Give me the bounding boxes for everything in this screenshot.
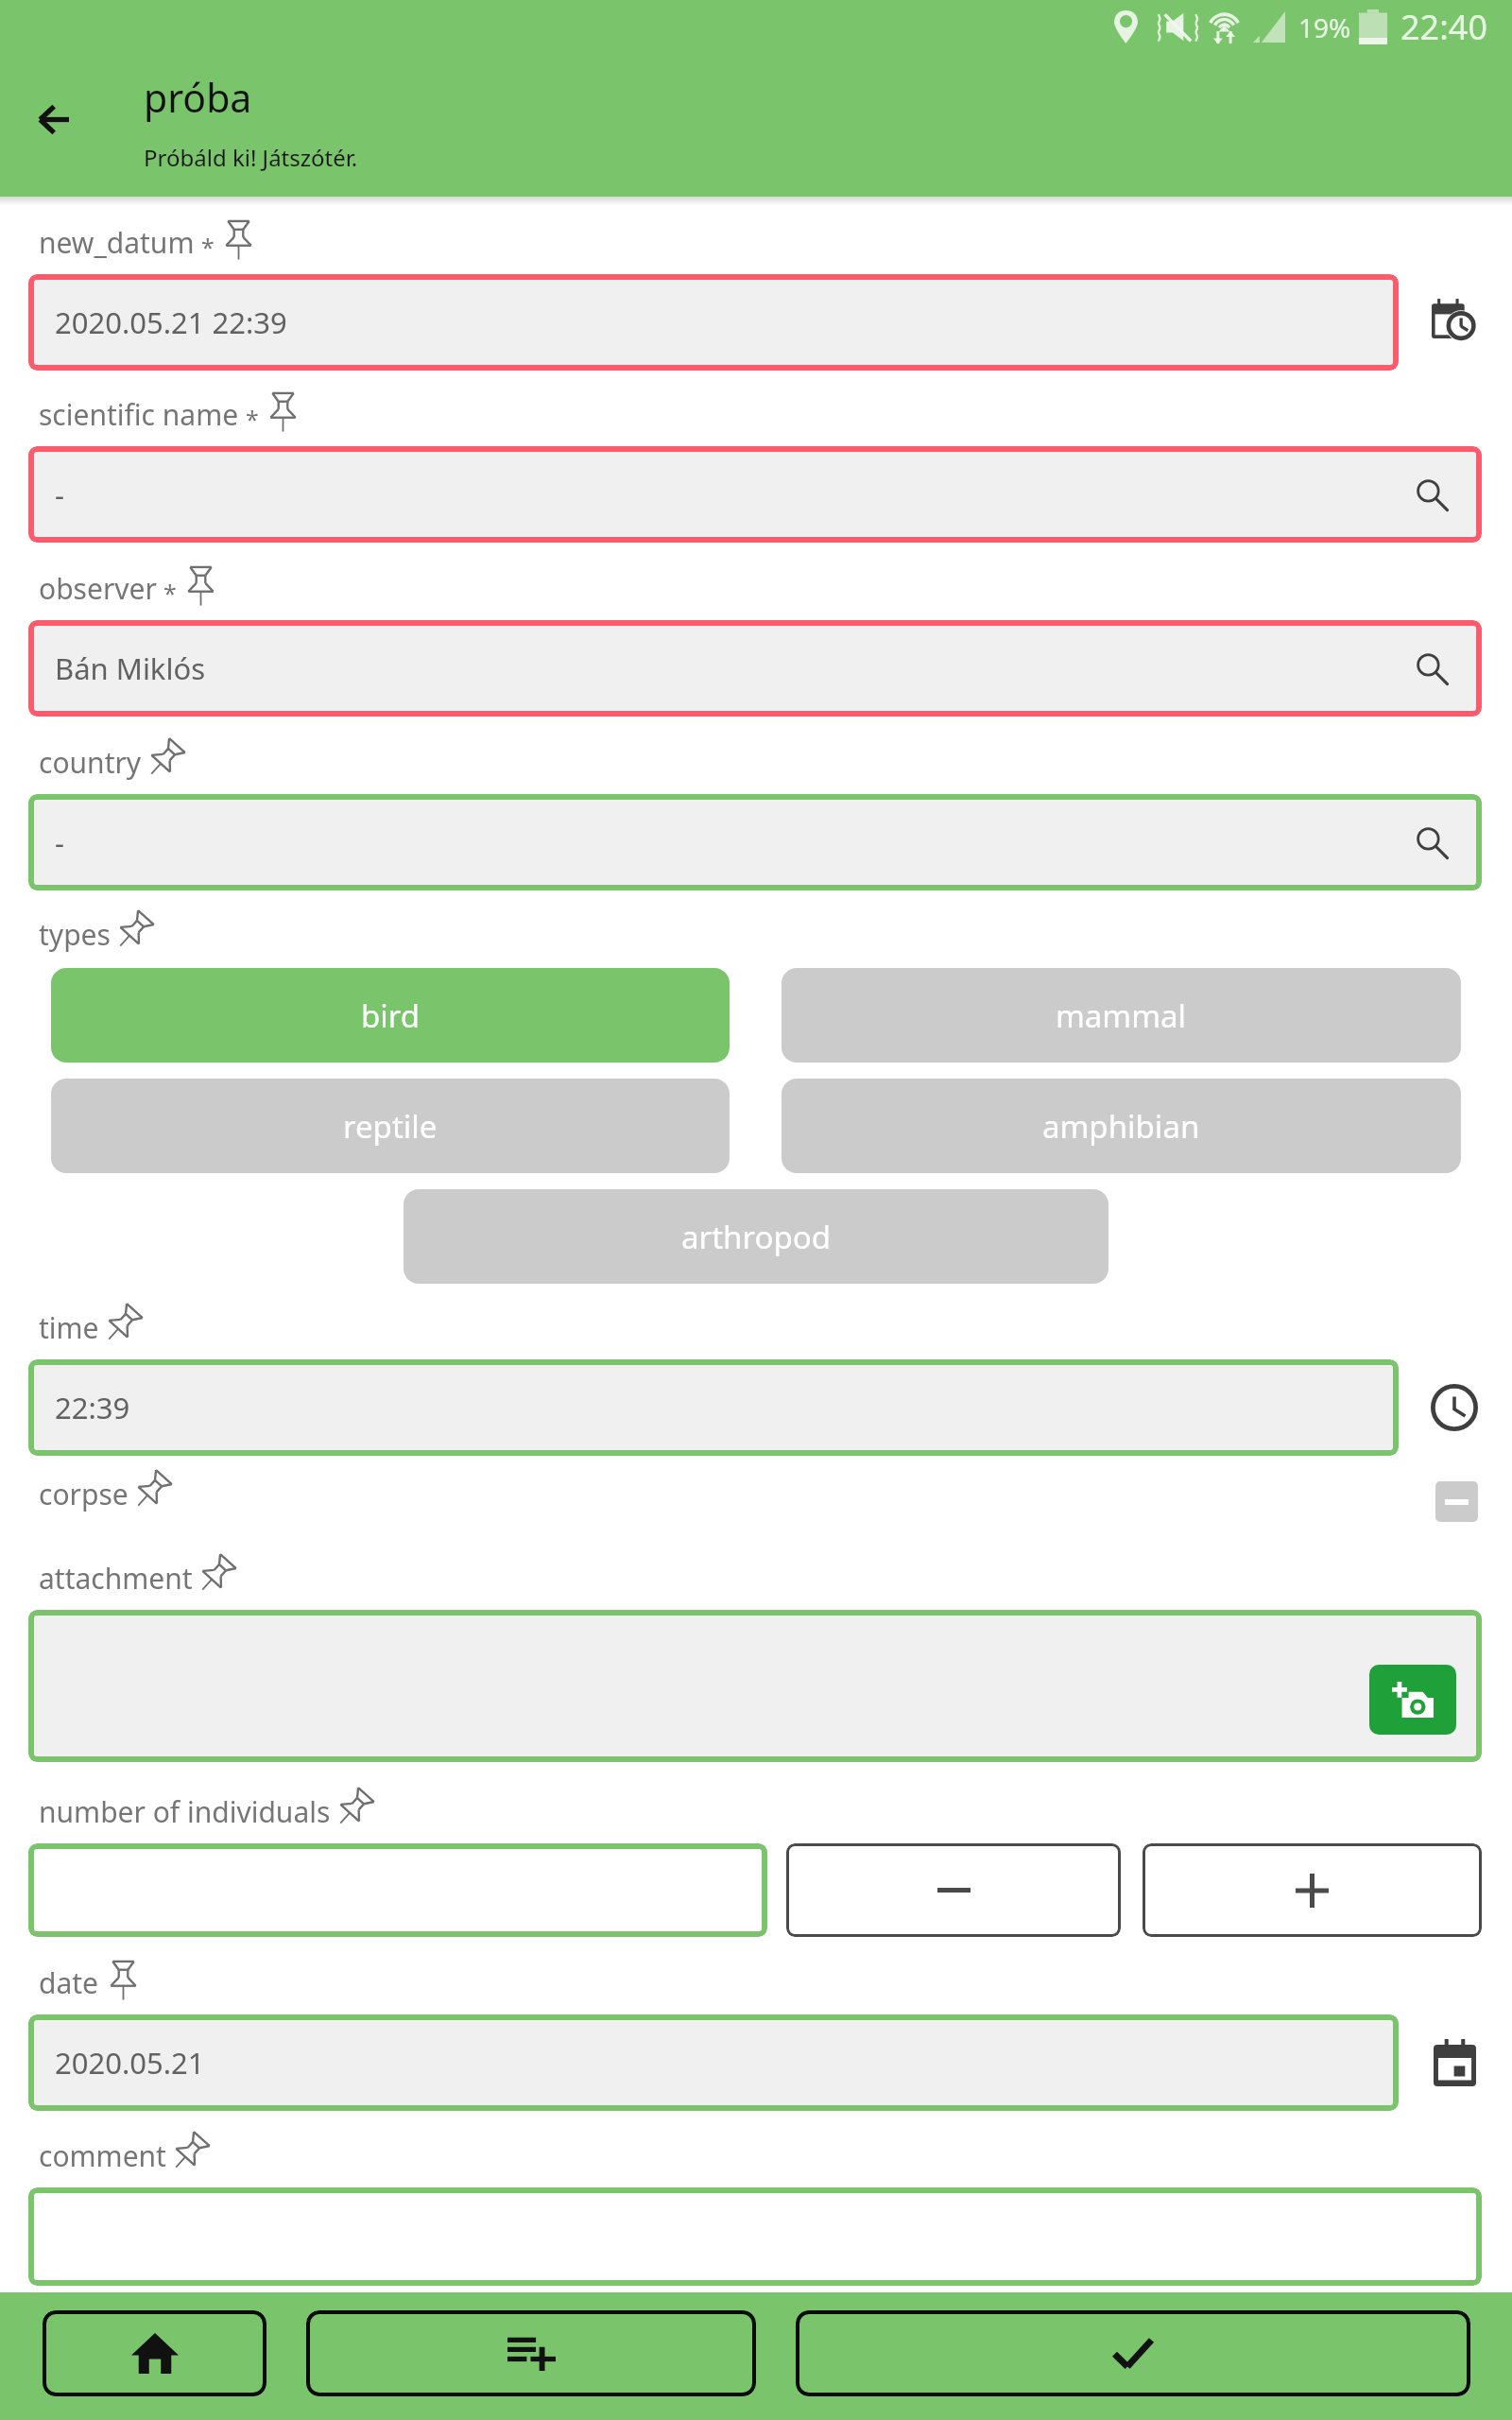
staticText: - [55, 475, 64, 514]
button[interactable]: - [28, 794, 1482, 890]
button[interactable]: Unpin date [105, 1959, 141, 2006]
button[interactable]: Bán Miklós [28, 620, 1482, 717]
button[interactable]: amphibian [782, 1079, 1461, 1173]
staticText: 2020.05.21 [55, 2043, 205, 2083]
button[interactable]: Pin corpse [134, 1470, 170, 1517]
button[interactable]: mammal [782, 968, 1461, 1063]
button[interactable]: 2020.05.21 [28, 2014, 1399, 2111]
staticText: country [39, 743, 142, 782]
button[interactable]: Pin attachment [198, 1554, 234, 1601]
button[interactable]: Add photo [1369, 1665, 1456, 1735]
button[interactable]: corpse [1435, 1481, 1478, 1522]
button[interactable]: Pick time [1427, 1380, 1482, 1435]
button[interactable]: Confirm [796, 2310, 1470, 2396]
button[interactable]: reptile [51, 1079, 730, 1173]
button[interactable]: Search [1406, 469, 1457, 520]
staticText: mammal [1056, 994, 1187, 1037]
button[interactable]: number of individuals input [28, 1843, 767, 1937]
button[interactable]: Add to list [306, 2310, 756, 2396]
button[interactable]: - [28, 446, 1482, 543]
button[interactable]: Search [1406, 817, 1457, 868]
button[interactable]: Pin number of individuals [336, 1788, 372, 1835]
staticText: 22:40 [1400, 4, 1488, 50]
button[interactable]: Pin country [147, 738, 183, 786]
staticText: scientific name [39, 395, 239, 434]
staticText: attachment [39, 1559, 193, 1598]
button[interactable]: Unpin observer [182, 564, 218, 612]
staticText: Próbáld ki! Játszótér. [144, 142, 358, 173]
staticText: time [39, 1308, 99, 1347]
staticText: new_datum [39, 223, 195, 262]
staticText: * [201, 231, 215, 263]
button[interactable]: Decrease [786, 1843, 1121, 1937]
button[interactable]: Pick date [1427, 2035, 1482, 2090]
button[interactable]: Increase [1143, 1843, 1482, 1937]
staticText: observer [39, 569, 157, 608]
staticText: 2020.05.21 22:39 [55, 302, 287, 342]
staticText: próba [144, 71, 252, 124]
staticText: comment [39, 2136, 166, 2175]
button[interactable]: arthropod [404, 1189, 1108, 1284]
staticText: corpse [39, 1475, 129, 1513]
button[interactable]: Pin time [105, 1304, 141, 1351]
staticText: * [163, 577, 177, 609]
staticText: number of individuals [39, 1792, 331, 1831]
staticText: Bán Miklós [55, 648, 206, 688]
button[interactable]: bird [51, 968, 730, 1063]
button[interactable]: Pin types [116, 910, 152, 958]
staticText: date [39, 1963, 99, 2002]
staticText: 22:39 [55, 1388, 130, 1427]
staticText: types [39, 915, 111, 954]
staticText: 19% [1298, 9, 1351, 45]
button[interactable]: 22:39 [28, 1359, 1399, 1456]
button[interactable]: Unpin scientific name [265, 390, 301, 438]
button[interactable]: Pick date and time [1427, 295, 1482, 350]
staticText: - [55, 822, 64, 862]
button[interactable]: comment input [28, 2187, 1482, 2286]
staticText: bird [361, 994, 421, 1037]
button[interactable]: Search [1406, 643, 1457, 694]
button[interactable]: Unpin new_datum [220, 218, 256, 266]
button[interactable]: 2020.05.21 22:39 [28, 274, 1399, 371]
button[interactable]: Home [43, 2310, 266, 2396]
button[interactable]: Back [15, 81, 91, 157]
staticText: amphibian [1042, 1105, 1200, 1148]
staticText: * [246, 403, 259, 435]
button[interactable]: Pin comment [172, 2132, 208, 2179]
staticText: arthropod [681, 1216, 831, 1258]
staticText: reptile [343, 1105, 438, 1148]
